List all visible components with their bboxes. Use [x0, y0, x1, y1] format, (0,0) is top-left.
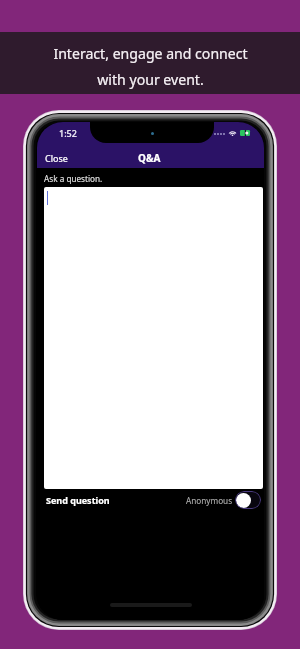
button[interactable]: Anonymous toggle — [235, 491, 261, 509]
staticText: Send question — [46, 494, 110, 506]
staticText: Close — [45, 152, 68, 164]
staticText: Q&A — [138, 151, 161, 165]
button[interactable]: Close — [39, 148, 74, 168]
staticText: with your event. — [97, 70, 204, 89]
staticText: Anonymous — [186, 495, 233, 506]
button[interactable]: Send question — [42, 490, 114, 510]
staticText: 1:52 — [59, 127, 77, 139]
staticText: Ask a question. — [44, 173, 103, 184]
staticText: Interact, engage and connect — [53, 44, 248, 63]
